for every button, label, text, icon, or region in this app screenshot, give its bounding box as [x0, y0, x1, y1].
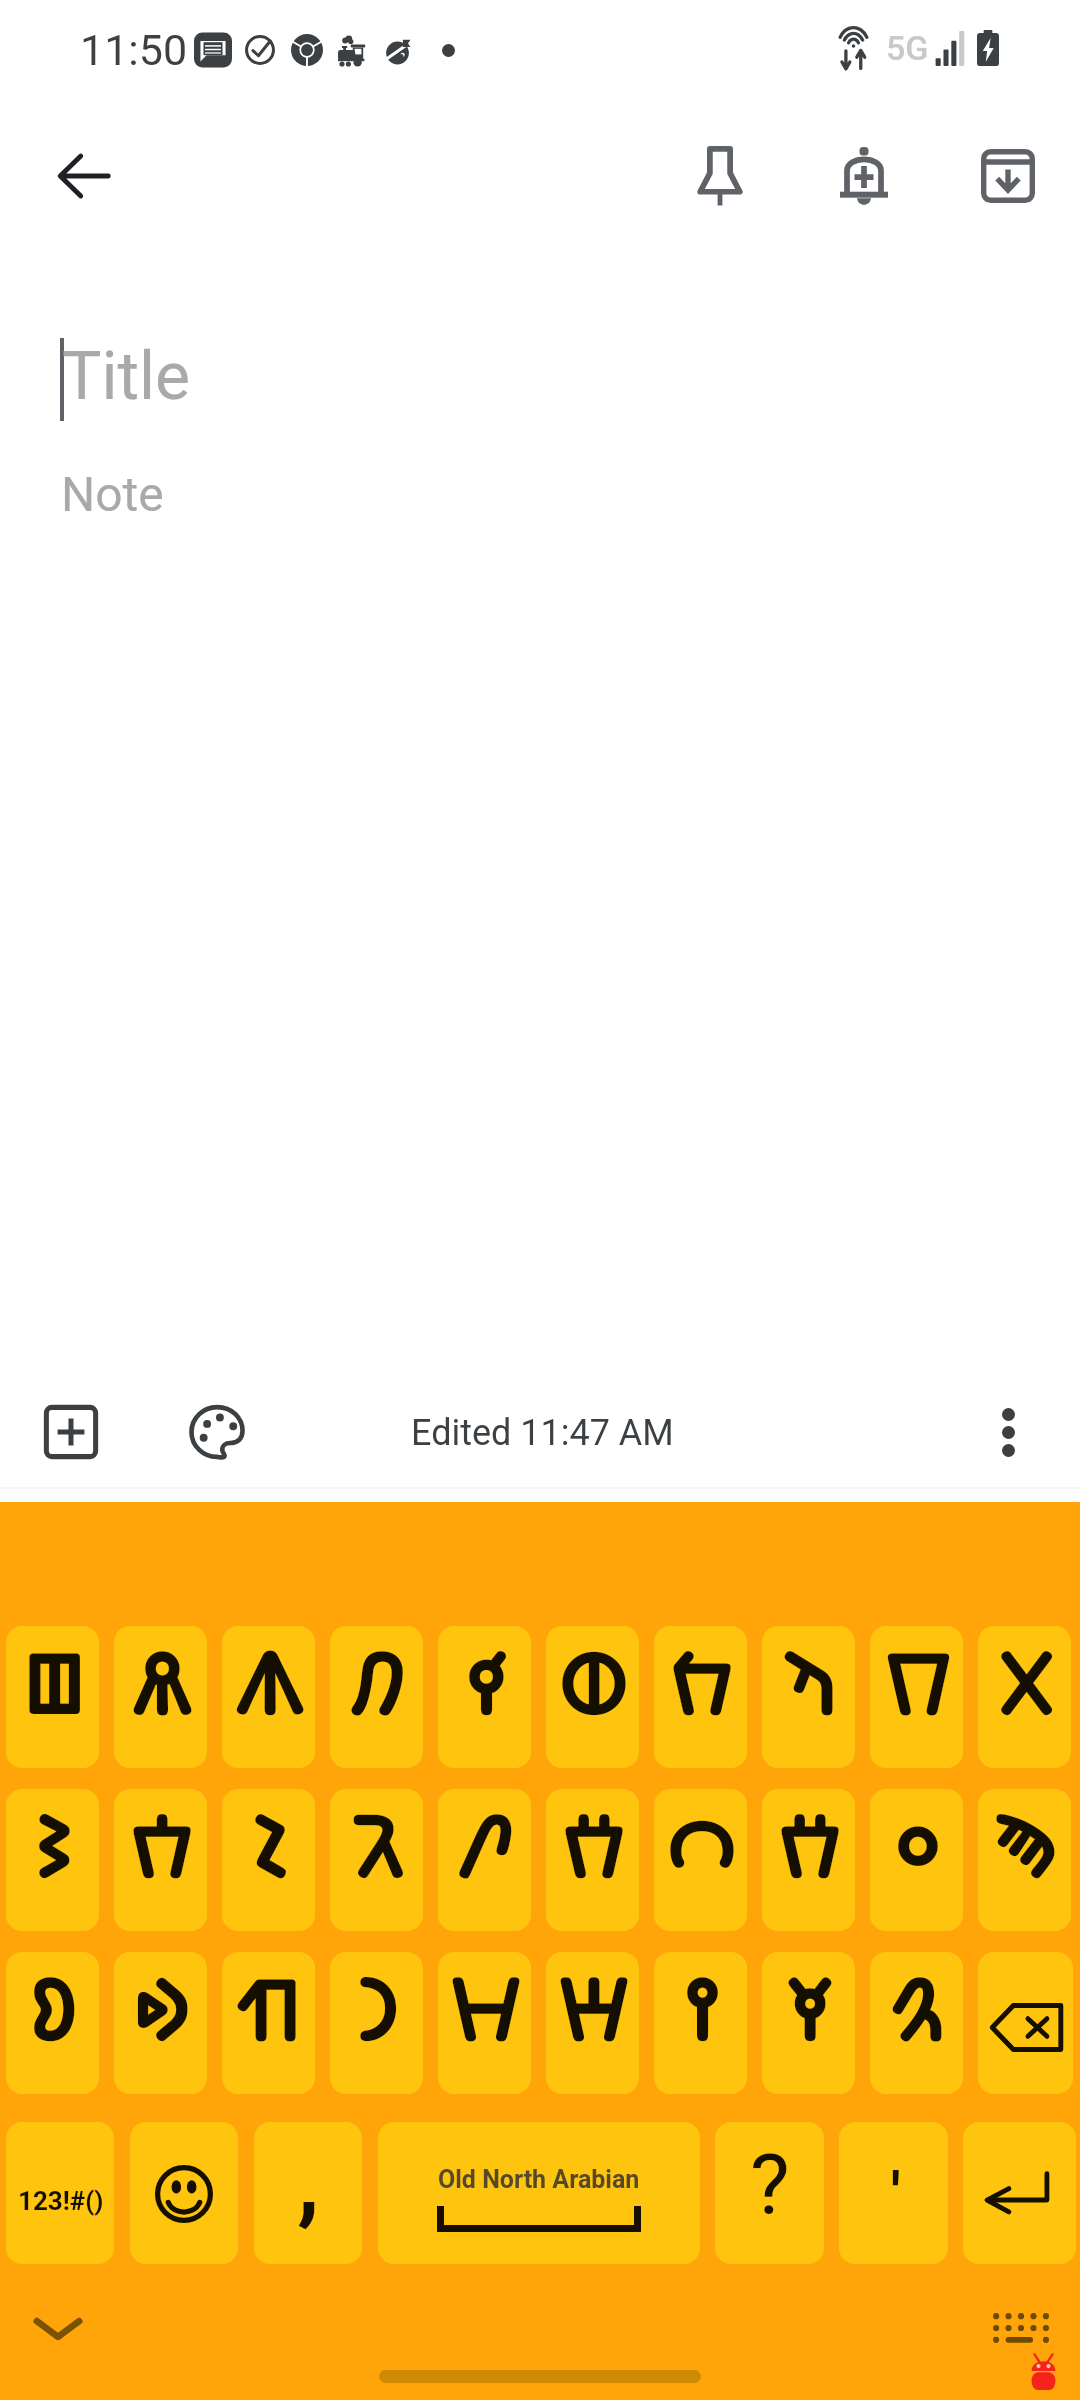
button[interactable]: ?: [715, 2122, 824, 2264]
button[interactable]: 𐪋: [654, 1626, 747, 1768]
staticText: 𐪗: [993, 1789, 1057, 1902]
staticText: ,: [297, 2128, 320, 2236]
button[interactable]: More options: [963, 1387, 1053, 1477]
button[interactable]: 𐪄: [438, 1626, 531, 1768]
staticText: 𐪑: [562, 1789, 623, 1902]
staticText: 𐪐: [666, 1789, 735, 1902]
button[interactable]: 𐪖: [222, 1952, 315, 2094]
button[interactable]: 123!#(): [6, 2122, 114, 2264]
button[interactable]: 𐪇: [330, 1952, 423, 2094]
button[interactable]: 𐪚: [654, 1952, 747, 2094]
staticText: 𐪊: [130, 1789, 191, 1902]
button[interactable]: 𐪜: [870, 1952, 963, 2094]
button[interactable]: 𐪔: [6, 1952, 99, 2094]
staticText: 𐪁: [457, 1789, 512, 1902]
button[interactable]: 𐪓: [6, 1626, 99, 1768]
staticText: 𐪔: [29, 1952, 76, 2065]
button[interactable]: 𐪛: [762, 1952, 855, 2094]
staticText: 𐪎: [131, 1626, 191, 1739]
button[interactable]: Note: [61, 466, 164, 522]
staticText: ': [891, 2159, 901, 2227]
staticText: 𐪂: [234, 1626, 303, 1739]
button[interactable]: 𐪎: [114, 1626, 207, 1768]
staticText: Edited 11:47 AM: [411, 1412, 674, 1454]
staticText: 𐪇: [356, 1952, 397, 2065]
button[interactable]: 𐪐: [654, 1789, 747, 1931]
staticText: 𐪓: [19, 1626, 87, 1739]
button[interactable]: 𐪉: [978, 1626, 1071, 1768]
button[interactable]: Add attachment: [26, 1387, 116, 1477]
staticText: 𐪙: [558, 1952, 627, 2065]
button[interactable]: 𐪃: [330, 1626, 423, 1768]
button[interactable]: 𐪙: [546, 1952, 639, 2094]
button[interactable]: 𐪆: [6, 1789, 99, 1931]
button[interactable]: 𐪒: [870, 1789, 963, 1931]
button[interactable]: 𐪕: [114, 1952, 207, 2094]
button[interactable]: ,: [254, 2122, 362, 2264]
button[interactable]: Switch keyboard: [975, 2295, 1067, 2361]
button[interactable]: 𐪑: [546, 1789, 639, 1931]
staticText: 𐪄: [464, 1626, 506, 1739]
button[interactable]: 𐪍: [330, 1789, 423, 1931]
button[interactable]: Enter: [963, 2122, 1076, 2264]
button[interactable]: Add reminder: [816, 129, 912, 225]
button[interactable]: 𐪑: [762, 1789, 855, 1931]
button[interactable]: 𐪁: [438, 1789, 531, 1931]
staticText: 𐪅: [558, 1626, 627, 1739]
button[interactable]: Emoji: [130, 2122, 238, 2264]
button[interactable]: Space: [378, 2122, 700, 2264]
staticText: 11:50: [80, 25, 188, 75]
button[interactable]: 𐪂: [222, 1626, 315, 1768]
button[interactable]: 𐪀: [762, 1626, 855, 1768]
button[interactable]: 𐪅: [546, 1626, 639, 1768]
button[interactable]: Hide keyboard: [10, 2292, 106, 2366]
staticText: 𐪚: [682, 1952, 720, 2065]
staticText: 𐪃: [348, 1626, 405, 1739]
staticText: 𐪕: [131, 1952, 190, 2065]
staticText: 𐪉: [996, 1626, 1054, 1739]
button[interactable]: Backspace: [978, 1952, 1073, 2094]
button[interactable]: Title: [62, 338, 191, 415]
staticText: 𐪒: [893, 1789, 940, 1902]
button[interactable]: 𐪘: [438, 1952, 531, 2094]
button[interactable]: Archive: [960, 128, 1056, 224]
staticText: 𐪍: [351, 1789, 402, 1902]
staticText: 𐪌: [250, 1789, 288, 1902]
button[interactable]: 𐪈: [870, 1626, 963, 1768]
staticText: 𐪀: [782, 1626, 836, 1739]
staticText: 𐪈: [885, 1626, 949, 1739]
staticText: 𐪆: [34, 1789, 72, 1902]
button[interactable]: Pin note: [672, 127, 768, 223]
button[interactable]: 𐪌: [222, 1789, 315, 1931]
staticText: 𐪑: [778, 1789, 839, 1902]
staticText: 𐪛: [785, 1952, 832, 2065]
staticText: ?: [750, 2136, 790, 2234]
staticText: 123!#(): [18, 2186, 104, 2216]
button[interactable]: Back: [36, 128, 132, 224]
button[interactable]: 𐪗: [978, 1789, 1071, 1931]
button[interactable]: ': [839, 2122, 948, 2264]
button[interactable]: 𐪊: [114, 1789, 207, 1931]
button[interactable]: Change color: [172, 1387, 262, 1477]
staticText: 𐪖: [235, 1952, 303, 2065]
staticText: 5G: [886, 28, 929, 68]
staticText: 𐪋: [670, 1626, 731, 1739]
staticText: 𐪘: [450, 1952, 519, 2065]
staticText: Old North Arabian: [438, 2165, 640, 2194]
staticText: 𐪜: [890, 1952, 944, 2065]
